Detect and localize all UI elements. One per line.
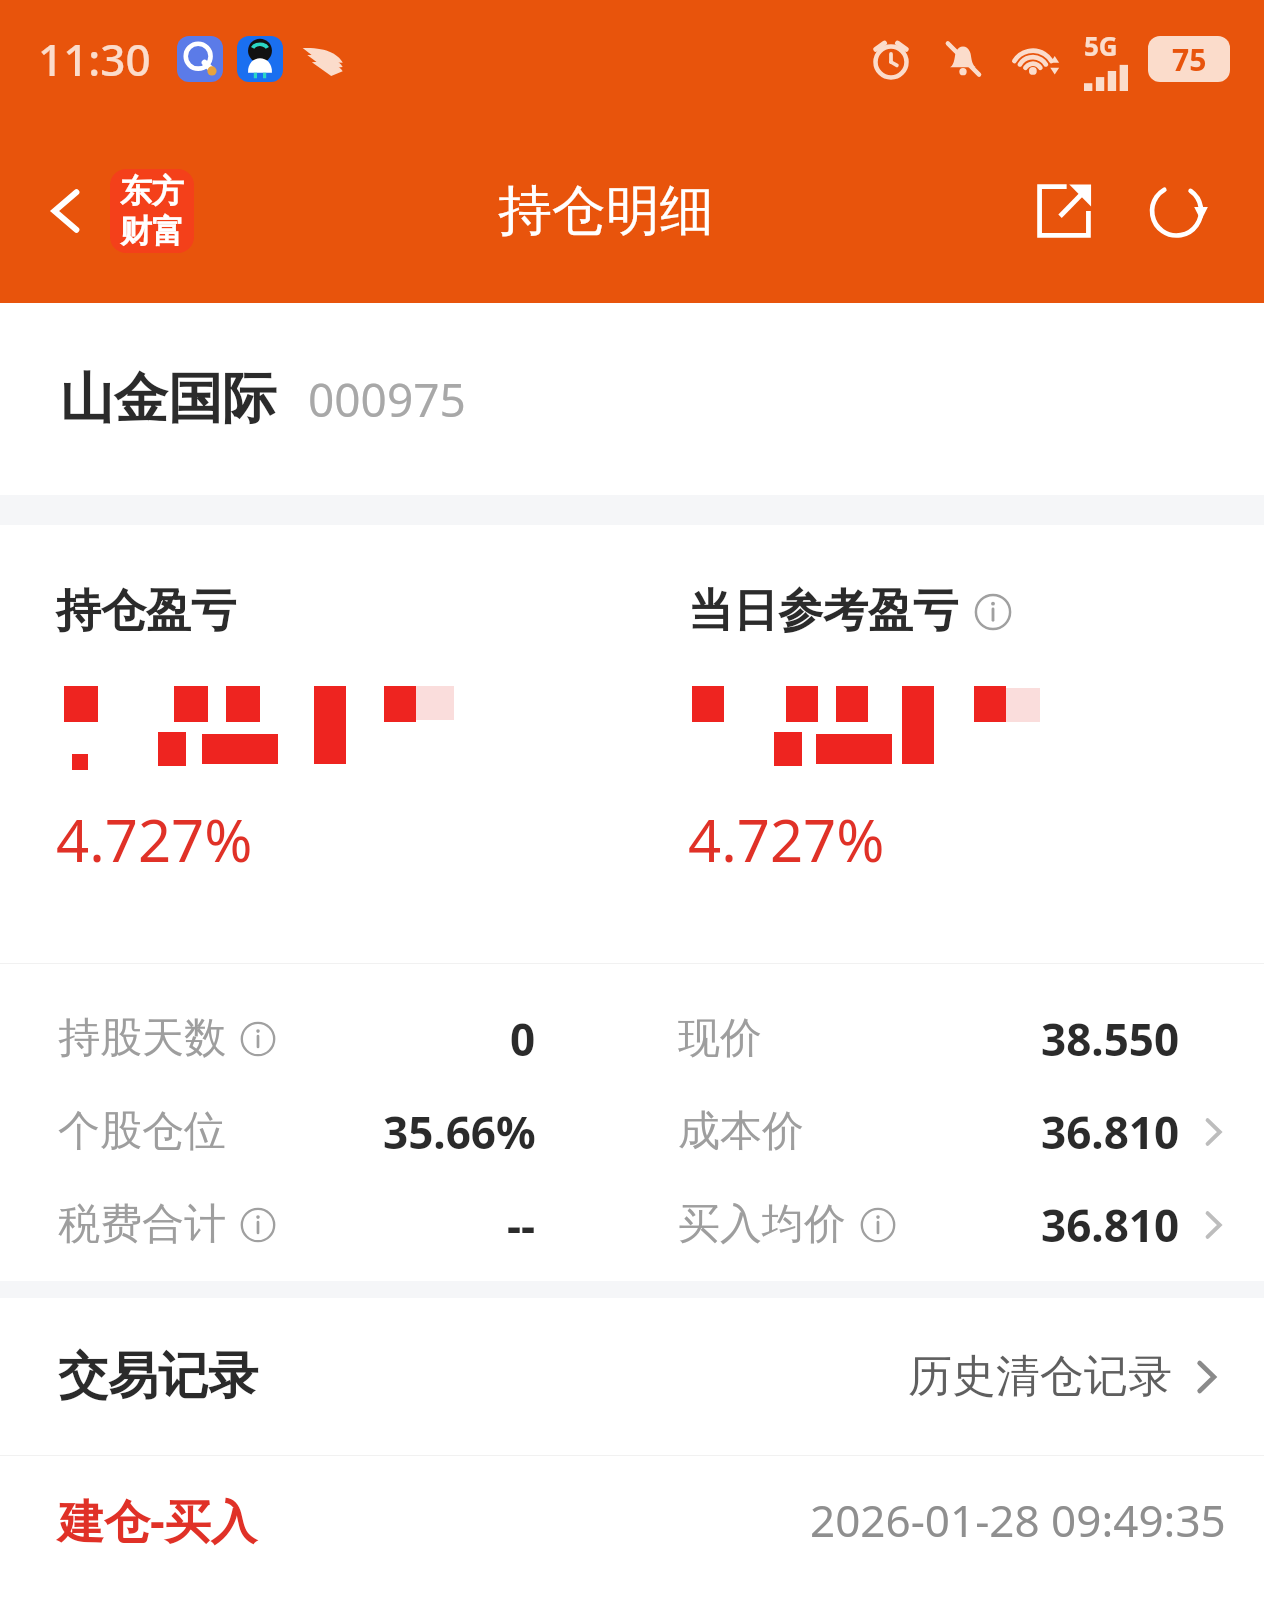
staticText: 个股仓位 <box>58 1105 226 1158</box>
button[interactable]: 买入均价 <box>678 1178 1230 1271</box>
button[interactable]: 成本价 <box>678 1085 1230 1178</box>
button[interactable]: 现价 <box>678 992 1230 1085</box>
staticText: 成本价 <box>678 1105 804 1158</box>
staticText: 4.727% <box>688 800 885 879</box>
staticText: 现价 <box>678 1012 762 1065</box>
staticText: 持仓盈亏 <box>56 583 236 640</box>
staticText: 历史清仓记录 <box>908 1349 1172 1404</box>
button[interactable]: Share <box>1018 165 1110 257</box>
button[interactable]: Back <box>26 171 106 251</box>
staticText: 36.810 <box>1041 1102 1180 1162</box>
staticText: 山金国际 <box>60 365 276 433</box>
staticText: 35.66% <box>383 1102 536 1162</box>
staticText: 东方 <box>120 171 184 211</box>
button[interactable]: 东方 <box>110 169 194 253</box>
button[interactable]: 税费合计 <box>58 1178 536 1271</box>
staticText: 5G <box>1084 28 1118 63</box>
staticText: 11:30 <box>38 29 151 89</box>
staticText: 000975 <box>308 368 466 431</box>
staticText: 38.550 <box>1041 1009 1180 1069</box>
staticText: 4.727% <box>56 800 253 879</box>
staticText: 2026-01-28 09:49:35 <box>810 1490 1226 1550</box>
staticText: 0 <box>510 1009 536 1069</box>
staticText: 税费合计 <box>58 1198 226 1251</box>
staticText: 持仓明细 <box>498 177 714 245</box>
button[interactable]: 山金国际 <box>60 303 1264 495</box>
button[interactable]: 个股仓位 <box>58 1085 536 1178</box>
staticText: 财富 <box>120 211 184 251</box>
staticText: 36.810 <box>1041 1195 1180 1255</box>
staticText: 当日参考盈亏 <box>688 583 958 640</box>
staticText: 持股天数 <box>58 1012 226 1065</box>
button[interactable]: Refresh <box>1132 165 1224 257</box>
staticText: -- <box>507 1195 536 1255</box>
button[interactable]: 历史清仓记录 <box>908 1349 1226 1404</box>
staticText: 75 <box>1172 39 1207 80</box>
staticText: 交易记录 <box>58 1345 258 1408</box>
staticText: 建仓-买入 <box>58 1489 257 1552</box>
staticText: 买入均价 <box>678 1198 846 1251</box>
button[interactable]: 建仓-买入 <box>58 1456 1226 1584</box>
button[interactable]: 持股天数 <box>58 992 536 1085</box>
